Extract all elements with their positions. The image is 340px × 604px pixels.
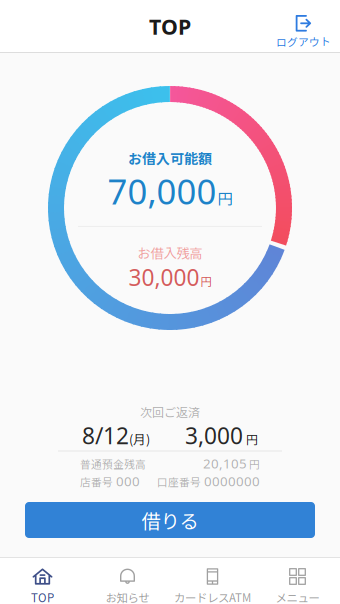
staticText: TOP (149, 12, 191, 41)
button[interactable]: 借りる (25, 502, 315, 538)
staticText: TOP (31, 589, 54, 604)
staticText: 70,000 (107, 168, 216, 214)
button[interactable]: ログアウト (262, 2, 340, 51)
staticText: ログアウト (276, 34, 331, 49)
button[interactable]: お知らせ (85, 557, 170, 604)
staticText: 30,000 (128, 262, 199, 292)
staticText: 店番号 (80, 474, 113, 489)
button[interactable]: メニュー (255, 557, 340, 604)
staticText: 口座番号 (157, 474, 201, 489)
staticText: 円 (217, 187, 232, 209)
staticText: 普通預金残高 (80, 456, 146, 471)
staticText: 円 (200, 273, 211, 289)
staticText: 3,000 (185, 420, 243, 450)
button[interactable]: カードレスATM (170, 557, 255, 604)
staticText: 20,105 (203, 454, 247, 472)
staticText: 円 (243, 430, 258, 448)
staticText: お借入可能額 (128, 148, 212, 168)
staticText: カードレスATM (174, 589, 251, 604)
staticText: お借入残高 (137, 243, 202, 262)
button[interactable]: TOP (0, 557, 85, 604)
staticText: 8/12 (82, 420, 129, 450)
staticText: 借りる (141, 506, 198, 534)
staticText: お知らせ (105, 589, 149, 604)
staticText: (月) (129, 429, 150, 448)
staticText: 000 (113, 472, 140, 490)
staticText: 0000000 (201, 472, 260, 490)
staticText: 次回ご返済 (140, 403, 200, 420)
staticText: メニュー (275, 589, 319, 604)
staticText: 円 (247, 456, 260, 471)
